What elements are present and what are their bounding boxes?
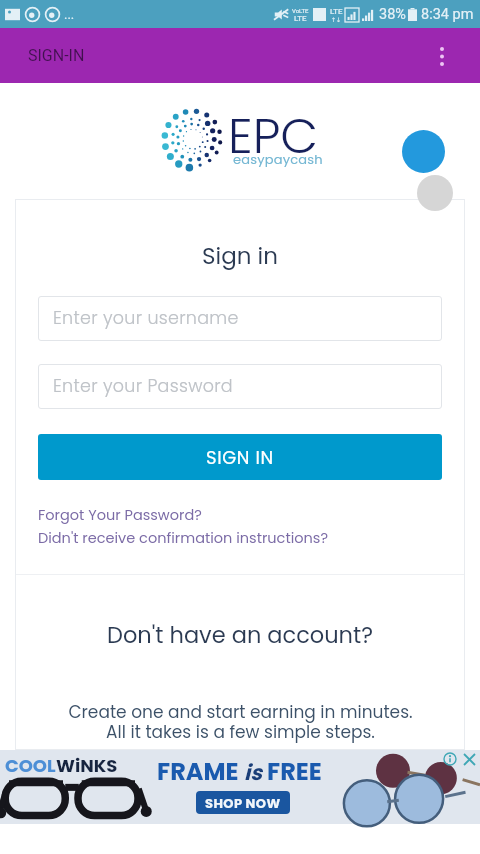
staticText: Enter your Password — [53, 374, 233, 399]
button[interactable]: Advertisement: Coolwinks frame is free — [0, 750, 480, 824]
staticText: FREE — [262, 755, 322, 789]
staticText: Didn't receive confirmation instructions… — [38, 528, 328, 548]
staticText: is — [244, 758, 262, 787]
staticText: Enter your username — [53, 306, 239, 331]
button[interactable]: Ad information — [442, 751, 458, 767]
staticText: SIGN-IN — [28, 46, 85, 65]
button[interactable]: Close ad — [461, 751, 477, 767]
button[interactable]: Chat support — [402, 130, 445, 173]
staticText: 8:34 pm — [421, 6, 474, 23]
button[interactable]: More options — [426, 40, 458, 72]
staticText: Forgot Your Password? — [38, 505, 202, 525]
staticText: WiNKS — [56, 753, 118, 778]
button[interactable]: SHOP NOW — [196, 791, 290, 814]
button[interactable]: SIGN IN — [38, 434, 442, 480]
staticText: Don't have an account? — [107, 619, 373, 650]
staticText: LTE — [330, 7, 343, 16]
staticText: EPC — [228, 102, 319, 171]
staticText: SHOP NOW — [205, 794, 281, 812]
button[interactable]: Didn't receive confirmation instructions… — [38, 525, 328, 550]
staticText: SIGN IN — [206, 445, 274, 470]
staticText: FRAME — [157, 755, 244, 789]
staticText: Create one and start earning in minutes.… — [68, 700, 413, 744]
button[interactable]: Forgot Your Password? — [38, 502, 202, 527]
staticText: COOL — [5, 753, 56, 778]
staticText: ... — [64, 7, 75, 22]
staticText: ↑↓ — [331, 16, 342, 23]
staticText: Sign in — [202, 240, 278, 272]
staticText: 38% — [379, 6, 406, 23]
button[interactable]: Enter your Password — [38, 364, 442, 409]
button[interactable]: Enter your username — [38, 296, 442, 341]
staticText: easypaycash — [233, 150, 323, 168]
staticText: LTE — [294, 14, 307, 23]
staticText: VoLTE — [292, 7, 309, 14]
